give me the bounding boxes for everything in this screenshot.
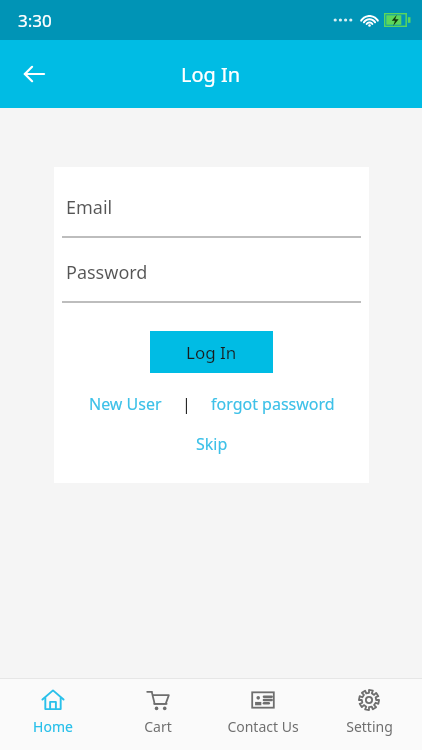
button[interactable]: Setting [316, 679, 422, 750]
staticText: 3:30 [18, 9, 52, 32]
staticText: | [182, 393, 191, 415]
staticText: forgot password [211, 393, 335, 415]
button[interactable]: Back [12, 52, 56, 96]
button[interactable]: Log In [150, 331, 273, 373]
staticText: Skip [196, 433, 228, 455]
button[interactable]: Contact Us [210, 679, 316, 750]
staticText: Setting [346, 717, 393, 736]
staticText: Cart [144, 717, 172, 736]
button[interactable]: Skip [188, 429, 236, 459]
staticText: Log In [181, 61, 241, 88]
staticText: Password [66, 260, 148, 285]
button[interactable]: Password [62, 260, 361, 303]
button[interactable]: Email [62, 195, 361, 238]
button[interactable]: Cart [105, 679, 210, 750]
staticText: Home [33, 717, 73, 736]
button[interactable]: New User [85, 389, 166, 419]
button[interactable]: forgot password [207, 389, 339, 419]
staticText: Contact Us [227, 717, 299, 736]
staticText: Email [66, 195, 113, 220]
staticText: Log In [186, 341, 237, 364]
staticText: New User [89, 393, 162, 415]
button[interactable]: Home [0, 679, 105, 750]
